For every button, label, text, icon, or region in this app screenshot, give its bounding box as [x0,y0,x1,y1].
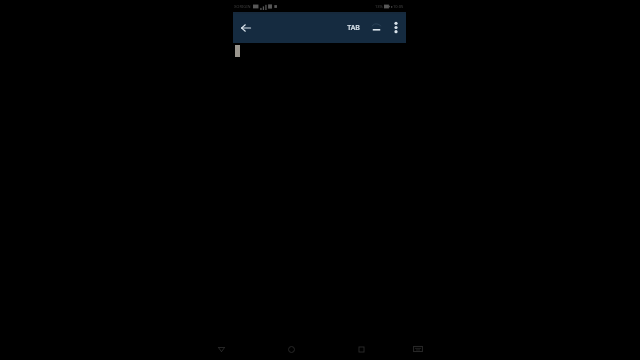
button[interactable]: Switch keyboard [407,338,429,360]
button[interactable]: More options [387,12,405,43]
staticText: 13% [375,4,383,9]
button[interactable]: Navigate up [233,12,259,43]
button[interactable]: Home [280,338,302,360]
button[interactable]: Minimize [367,12,385,43]
button[interactable]: Back [210,338,232,360]
staticText: ▸10:05 [391,4,404,9]
staticText: XORIGIN [234,4,251,9]
button[interactable]: Recent apps [350,338,372,360]
button[interactable]: TAB [344,12,363,43]
staticText: TAB [347,23,360,33]
